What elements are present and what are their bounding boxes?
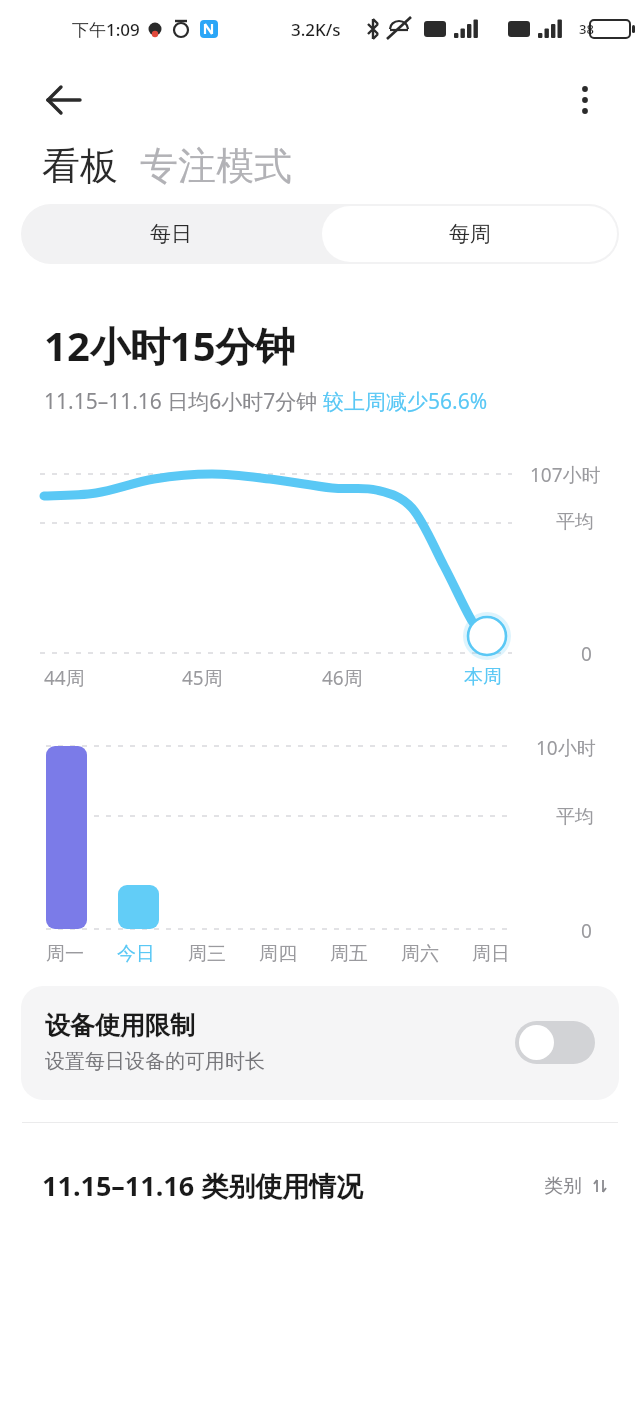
staticText: 10小时 [536, 735, 596, 761]
button[interactable]: 今日 [117, 942, 155, 966]
staticText: 3.2K/s [291, 18, 341, 41]
staticText: 较上周减少56.6% [323, 387, 488, 416]
button[interactable]: 周日 [472, 942, 510, 966]
staticText: 周日 [472, 942, 510, 966]
staticText: 下午1:09 [72, 18, 140, 41]
staticText: 38 [579, 20, 594, 38]
staticText: 每周 [449, 221, 491, 247]
button[interactable]: 类别 [544, 1174, 610, 1198]
staticText: 44周 [44, 665, 85, 691]
staticText: 周六 [401, 942, 439, 966]
button[interactable]: 44周 [44, 665, 85, 691]
button[interactable]: 46周 [322, 665, 363, 691]
staticText: 45周 [182, 665, 223, 691]
button[interactable]: Back [30, 66, 98, 134]
button[interactable]: 看板 [42, 142, 118, 190]
button[interactable]: 周四 [259, 942, 297, 966]
staticText: 周一 [46, 942, 84, 966]
staticText: 看板 [42, 142, 118, 190]
staticText: 本周 [464, 665, 502, 689]
button[interactable]: 周三 [188, 942, 226, 966]
staticText: 11.15–11.16 类别使用情况 [42, 1167, 544, 1204]
button[interactable]: 每日 [21, 204, 320, 264]
button[interactable]: 专注模式 [140, 142, 292, 190]
button[interactable]: 每周 [322, 206, 617, 262]
staticText: 平均 [556, 510, 594, 534]
staticText: 周三 [188, 942, 226, 966]
staticText: 0 [581, 918, 592, 944]
staticText: 0 [581, 641, 592, 667]
staticText: 平均 [556, 805, 594, 829]
staticText: 今日 [117, 942, 155, 966]
staticText: 专注模式 [140, 142, 292, 190]
staticText: 周四 [259, 942, 297, 966]
staticText: 周五 [330, 942, 368, 966]
button[interactable]: 45周 [182, 665, 223, 691]
staticText: 设置每日设备的可用时长 [45, 1049, 265, 1074]
staticText: 类别 [544, 1174, 582, 1198]
staticText: 每日 [150, 221, 192, 247]
button[interactable]: 周六 [401, 942, 439, 966]
button[interactable]: Device usage limit toggle [515, 1021, 595, 1064]
staticText: 12小时15分钟 [44, 318, 296, 373]
button[interactable]: 本周 [464, 665, 502, 689]
button[interactable]: 周一 [46, 942, 84, 966]
staticText: 设备使用限制 [45, 1010, 195, 1041]
staticText: 11.15–11.16 日均6小时7分钟 [44, 387, 323, 416]
staticText: 46周 [322, 665, 363, 691]
button[interactable]: 设备使用限制 [21, 986, 619, 1100]
button[interactable]: 周五 [330, 942, 368, 966]
button[interactable]: More options [554, 69, 616, 131]
staticText: 107小时 [530, 462, 601, 488]
